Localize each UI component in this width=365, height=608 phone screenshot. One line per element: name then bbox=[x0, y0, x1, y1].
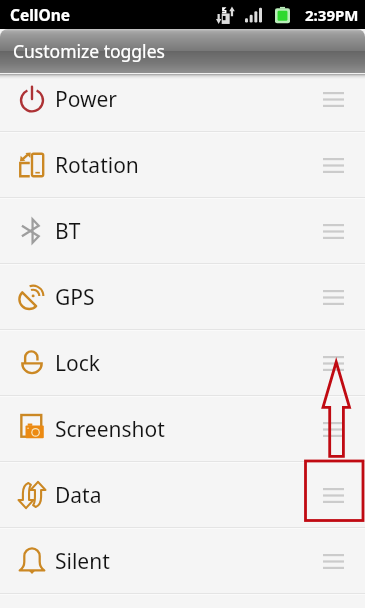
button[interactable]: Data bbox=[0, 463, 365, 527]
button[interactable]: Reorder Silent bbox=[302, 529, 365, 593]
button[interactable]: BT bbox=[0, 199, 365, 263]
button[interactable]: GPS bbox=[0, 265, 365, 329]
button[interactable]: Power bbox=[0, 67, 365, 131]
button[interactable]: Reorder Rotation bbox=[302, 133, 365, 197]
button[interactable]: Reorder GPS bbox=[302, 265, 365, 329]
button[interactable]: Reorder BT bbox=[302, 199, 365, 263]
button[interactable]: Reorder Data bbox=[302, 463, 365, 527]
staticText: Rotation bbox=[55, 151, 139, 180]
staticText: Screenshot bbox=[55, 415, 165, 444]
staticText: BT bbox=[55, 217, 81, 246]
staticText: GPS bbox=[55, 283, 95, 312]
button[interactable]: Silent bbox=[0, 529, 365, 593]
button[interactable]: Lock bbox=[0, 331, 365, 395]
button[interactable]: Reorder Lock bbox=[302, 331, 365, 395]
staticText: 2:39PM bbox=[305, 5, 359, 25]
staticText: Data bbox=[55, 481, 102, 510]
staticText: Silent bbox=[55, 547, 110, 576]
staticText: CellOne bbox=[10, 4, 71, 25]
button[interactable]: Reorder Power bbox=[302, 67, 365, 131]
button[interactable]: Screenshot bbox=[0, 397, 365, 461]
staticText: Power bbox=[55, 85, 118, 114]
button[interactable]: Rotation bbox=[0, 133, 365, 197]
staticText: Customize toggles bbox=[13, 39, 165, 63]
staticText: Lock bbox=[55, 349, 101, 378]
button[interactable]: Reorder Screenshot bbox=[302, 397, 365, 461]
